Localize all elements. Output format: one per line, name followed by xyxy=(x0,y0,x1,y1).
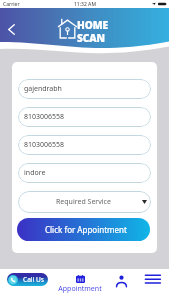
staticText: Required Service xyxy=(56,197,111,207)
staticText: Carrier xyxy=(3,1,20,8)
staticText: gajendrabh xyxy=(24,84,62,94)
button[interactable]: Appointment xyxy=(55,275,105,293)
button[interactable]: Click for Appointment xyxy=(17,218,150,241)
button[interactable]: Required Service xyxy=(18,191,151,213)
staticText: indore xyxy=(24,168,46,178)
button[interactable]: 8103006558 xyxy=(18,135,151,155)
button[interactable]: Call Us xyxy=(7,273,48,286)
staticText: HOME xyxy=(77,18,108,32)
staticText: 8103006558 xyxy=(24,140,65,150)
staticText: Appointment xyxy=(58,284,102,294)
button[interactable]: Profile xyxy=(113,272,130,289)
staticText: Click for Appointment xyxy=(45,224,127,235)
staticText: 11:32 AM xyxy=(74,1,96,8)
button[interactable]: Back xyxy=(2,21,19,38)
button[interactable]: Menu xyxy=(145,273,161,285)
button[interactable]: gajendrabh xyxy=(18,79,151,99)
staticText: Call Us xyxy=(23,275,44,284)
staticText: SCAN xyxy=(77,31,105,45)
staticText: 8103006558 xyxy=(24,112,65,122)
button[interactable]: indore xyxy=(18,163,151,183)
button[interactable]: 8103006558 xyxy=(18,107,151,127)
